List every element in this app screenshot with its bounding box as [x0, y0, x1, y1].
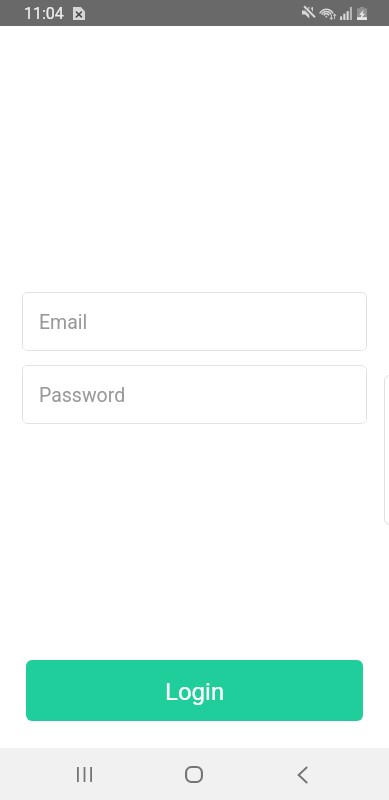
button[interactable]: Home — [166, 748, 221, 800]
staticText: Login — [165, 678, 225, 706]
staticText: Password — [39, 384, 126, 407]
button[interactable]: Email — [22, 292, 367, 351]
button[interactable]: Recent apps — [57, 748, 112, 800]
button[interactable]: Password — [22, 365, 367, 424]
button[interactable]: Back — [275, 748, 330, 800]
staticText: Email — [39, 311, 88, 334]
staticText: 11:04 — [24, 4, 64, 23]
button[interactable]: Login — [26, 660, 363, 721]
